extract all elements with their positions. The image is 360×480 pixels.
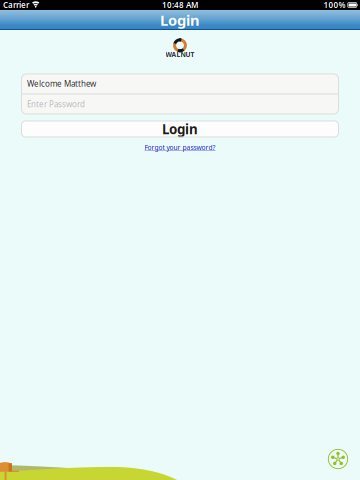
staticText: Login	[162, 120, 198, 138]
staticText: 100%	[324, 0, 346, 10]
staticText: WALNUT	[165, 50, 194, 59]
staticText: Login	[160, 10, 200, 30]
button[interactable]: Forgot your password?	[144, 137, 215, 152]
button[interactable]: Login	[21, 121, 338, 137]
staticText: Forgot your password?	[144, 143, 215, 152]
staticText: 10:48 AM	[162, 0, 198, 10]
staticText: Welcome Matthew	[27, 78, 96, 89]
staticText: Carrier	[3, 0, 29, 10]
staticText: Enter Password	[27, 99, 85, 109]
